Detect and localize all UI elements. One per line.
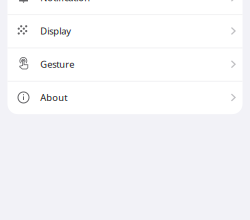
button[interactable]: Notification	[7, 0, 242, 14]
staticText: About	[40, 91, 67, 104]
button[interactable]: Display	[7, 14, 242, 48]
button[interactable]: About	[7, 81, 242, 114]
staticText: Display	[40, 25, 71, 37]
staticText: Notification	[40, 0, 90, 4]
button[interactable]: Gesture	[7, 48, 242, 81]
staticText: Gesture	[40, 58, 74, 70]
